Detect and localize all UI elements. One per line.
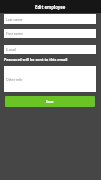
button[interactable]: First name <box>4 29 96 38</box>
staticText: First name <box>6 31 23 36</box>
button[interactable]: Save <box>5 96 95 107</box>
staticText: Password will be sent to this email <box>4 57 68 62</box>
staticText: Save <box>46 100 54 104</box>
staticText: E-mail <box>6 47 16 52</box>
button[interactable]: Last name <box>4 14 96 24</box>
staticText: Edit employee <box>35 4 66 10</box>
staticText: Last name <box>6 17 23 22</box>
button[interactable]: E-mail <box>4 45 96 54</box>
staticText: Other info <box>6 77 23 82</box>
button[interactable]: Other info <box>4 66 96 92</box>
